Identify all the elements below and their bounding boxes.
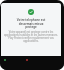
staticText: Votre telephone est desormais mieux prot… xyxy=(2,18,60,29)
staticText: Votre appareil est protege contre les ap… xyxy=(2,30,60,42)
button[interactable]: Play Protect xyxy=(28,9,34,15)
